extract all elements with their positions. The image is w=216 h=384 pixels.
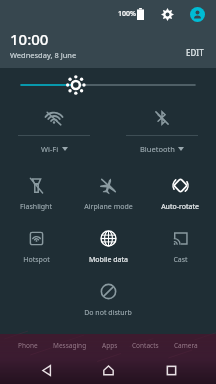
button[interactable] xyxy=(0,70,216,100)
button[interactable]: Airplane mode xyxy=(72,170,144,223)
staticText: Do not disturb xyxy=(84,308,132,318)
button[interactable]: Back xyxy=(29,357,63,383)
staticText: Camera xyxy=(174,341,198,350)
staticText: Auto-rotate xyxy=(161,202,199,212)
button[interactable]: Contacts xyxy=(131,340,160,351)
staticText: Flashlight xyxy=(20,202,52,212)
staticText: Bluetooth xyxy=(140,144,175,154)
button[interactable]: Home xyxy=(91,357,125,383)
button[interactable]: Camera xyxy=(173,340,199,351)
button[interactable]: EDIT xyxy=(184,45,206,60)
staticText: Cast xyxy=(173,255,188,265)
button[interactable]: Apps xyxy=(101,340,119,351)
button[interactable]: Flashlight xyxy=(0,170,72,223)
staticText: Contacts xyxy=(132,341,159,350)
button[interactable]: Messaging xyxy=(52,340,88,351)
button[interactable]: Phone xyxy=(17,340,39,351)
staticText: Airplane mode xyxy=(84,202,133,212)
button[interactable]: Cast xyxy=(144,223,216,276)
button[interactable]: Settings xyxy=(156,3,178,25)
button[interactable]: User xyxy=(186,3,208,25)
staticText: Wi-Fi xyxy=(41,144,59,154)
staticText: Mobile data xyxy=(89,255,128,265)
staticText: Messaging xyxy=(53,341,87,350)
button[interactable]: Mobile data xyxy=(72,223,144,276)
staticText: Wednesday, 8 June xyxy=(10,50,77,60)
button[interactable]: Do not disturb xyxy=(72,276,144,329)
button[interactable]: Bluetooth xyxy=(108,100,216,164)
staticText: 10:00 xyxy=(10,29,49,49)
staticText: EDIT xyxy=(186,47,204,58)
staticText: Hotspot xyxy=(23,255,50,265)
button[interactable]: Auto-rotate xyxy=(144,170,216,223)
staticText: Phone xyxy=(18,341,38,350)
staticText: 100% xyxy=(118,9,136,19)
button[interactable]: Recents xyxy=(154,357,188,383)
button[interactable]: Wi-Fi xyxy=(0,100,108,164)
button[interactable]: Hotspot xyxy=(0,223,72,276)
staticText: Apps xyxy=(102,341,118,350)
